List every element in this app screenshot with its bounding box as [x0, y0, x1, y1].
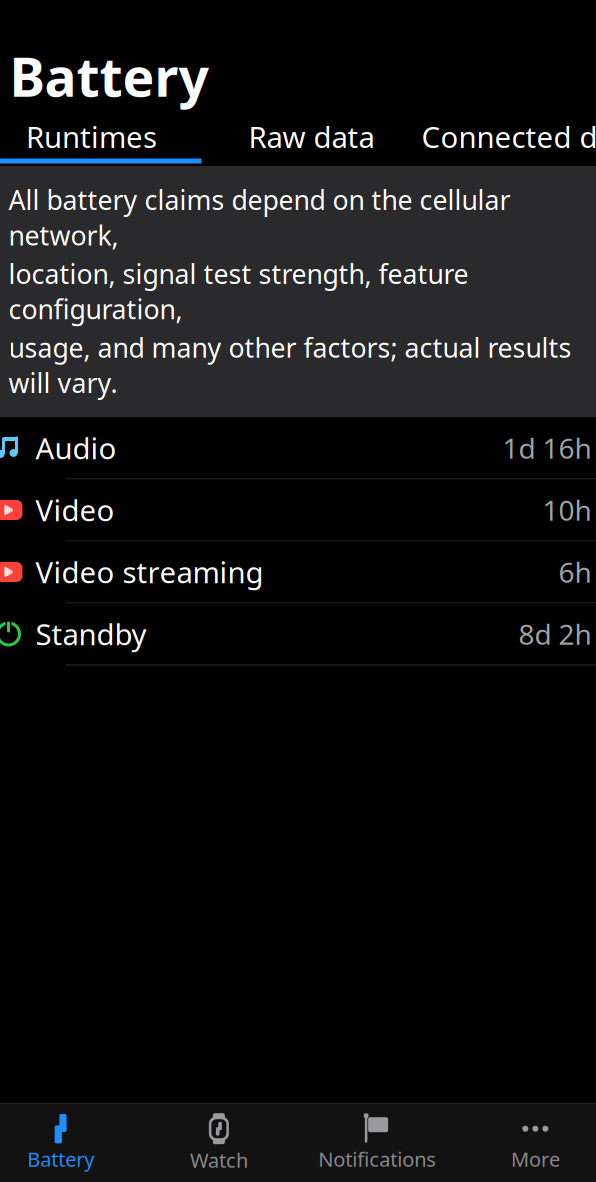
button[interactable]: Video streaming	[0, 541, 596, 603]
staticText: location, signal test strength, feature …	[8, 256, 468, 327]
staticText: Video	[35, 490, 114, 529]
staticText: Runtimes	[26, 117, 157, 156]
staticText: Battery	[9, 41, 208, 111]
staticText: Connected de	[421, 117, 596, 156]
button[interactable]: Notifications	[298, 1104, 456, 1182]
staticText: Audio	[35, 428, 116, 467]
staticText: Raw data	[248, 117, 374, 156]
staticText: 8d 2h	[518, 615, 591, 653]
staticText: 6h	[558, 553, 591, 591]
button[interactable]: Standby	[0, 603, 596, 665]
button[interactable]: Connected de	[421, 109, 596, 163]
staticText: Standby	[35, 614, 146, 653]
staticText: usage, and many other factors; actual re…	[8, 330, 571, 400]
button[interactable]: Watch	[140, 1104, 298, 1182]
staticText: Video streaming	[35, 552, 263, 591]
staticText: Watch	[190, 1147, 248, 1173]
staticText: 1d 16h	[502, 429, 591, 467]
button[interactable]: Audio	[0, 417, 596, 479]
button[interactable]: Battery	[0, 1104, 140, 1182]
button[interactable]: Video	[0, 479, 596, 541]
staticText: All battery claims depend on the cellula…	[8, 182, 510, 253]
button[interactable]: Runtimes	[0, 109, 201, 163]
staticText: More	[511, 1146, 560, 1172]
staticText: 10h	[542, 491, 591, 529]
button[interactable]: Raw data	[201, 109, 421, 163]
staticText: Battery	[27, 1146, 94, 1172]
staticText: Notifications	[318, 1146, 436, 1172]
button[interactable]: More	[456, 1104, 596, 1182]
